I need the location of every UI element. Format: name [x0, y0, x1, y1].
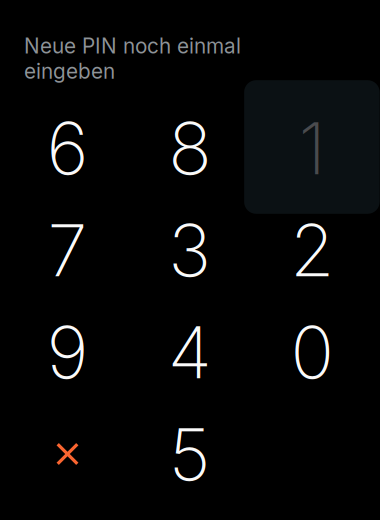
- button[interactable]: 7: [6, 199, 129, 301]
- staticText: 6: [46, 104, 88, 191]
- button[interactable]: 9: [6, 301, 129, 403]
- button[interactable]: 4: [129, 301, 251, 403]
- button[interactable]: 2: [251, 199, 373, 301]
- button[interactable]: 0: [251, 301, 373, 403]
- staticText: 2: [290, 206, 334, 293]
- button[interactable]: 1: [251, 97, 373, 199]
- staticText: 4: [168, 308, 212, 395]
- staticText: 1: [298, 104, 325, 191]
- button[interactable]: 3: [129, 199, 251, 301]
- staticText: 8: [168, 104, 211, 191]
- button[interactable]: 5: [129, 403, 251, 505]
- staticText: Neue PIN noch einmal eingeben: [24, 33, 241, 84]
- button[interactable]: 6: [6, 97, 129, 199]
- staticText: 7: [47, 206, 87, 293]
- button[interactable]: Delete: [6, 403, 129, 505]
- staticText: 5: [169, 410, 211, 497]
- button[interactable]: 8: [129, 97, 251, 199]
- staticText: 0: [290, 308, 333, 395]
- staticText: 3: [168, 206, 211, 293]
- staticText: 9: [46, 308, 88, 395]
